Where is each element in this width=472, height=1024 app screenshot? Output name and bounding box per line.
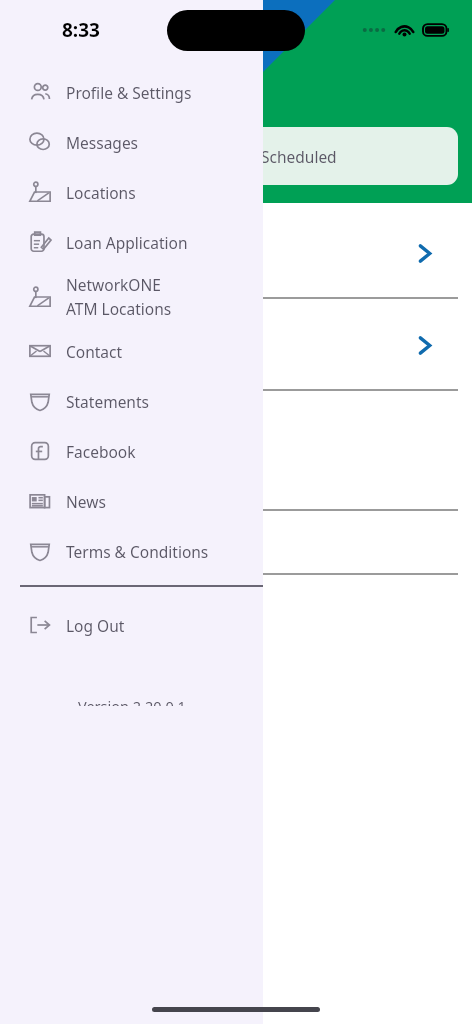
other: Open details — [418, 244, 431, 263]
button[interactable]: Statements — [0, 376, 263, 426]
button[interactable]: Contact — [0, 326, 263, 376]
staticText: Terms & Conditions — [66, 541, 209, 562]
button[interactable]: Profile & Settings — [0, 67, 263, 117]
button[interactable]: Messages — [0, 117, 263, 167]
button[interactable]: Scheduled — [140, 127, 458, 185]
staticText: Scheduled — [261, 146, 337, 167]
staticText: Loan Application — [66, 232, 188, 253]
button[interactable]: NetworkONE — [0, 267, 263, 326]
staticText: NetworkONE — [66, 274, 161, 295]
staticText: Facebook — [66, 441, 136, 462]
staticText: 8:33 — [62, 17, 100, 43]
staticText: Log Out — [66, 615, 125, 636]
staticText: ATM Locations — [66, 298, 172, 319]
button[interactable]: Terms & Conditions — [0, 526, 263, 576]
button[interactable]: Open details — [0, 207, 461, 299]
staticText: Contact — [66, 341, 123, 362]
staticText: Version 2.20.0.1 — [78, 696, 186, 706]
button[interactable]: Open details — [0, 299, 461, 391]
button[interactable]: Loan Application — [0, 217, 263, 267]
staticText: News — [66, 491, 106, 512]
staticText: Messages — [66, 132, 139, 153]
staticText: Profile & Settings — [66, 82, 192, 103]
button[interactable]: Locations — [0, 167, 263, 217]
button[interactable]: Log Out — [0, 600, 263, 650]
staticText: Locations — [66, 182, 136, 203]
other: Open details — [418, 336, 431, 355]
button[interactable]: Facebook — [0, 426, 263, 476]
button[interactable]: Transfer — [186, 918, 286, 982]
staticText: Statements — [66, 391, 149, 412]
button[interactable]: News — [0, 476, 263, 526]
